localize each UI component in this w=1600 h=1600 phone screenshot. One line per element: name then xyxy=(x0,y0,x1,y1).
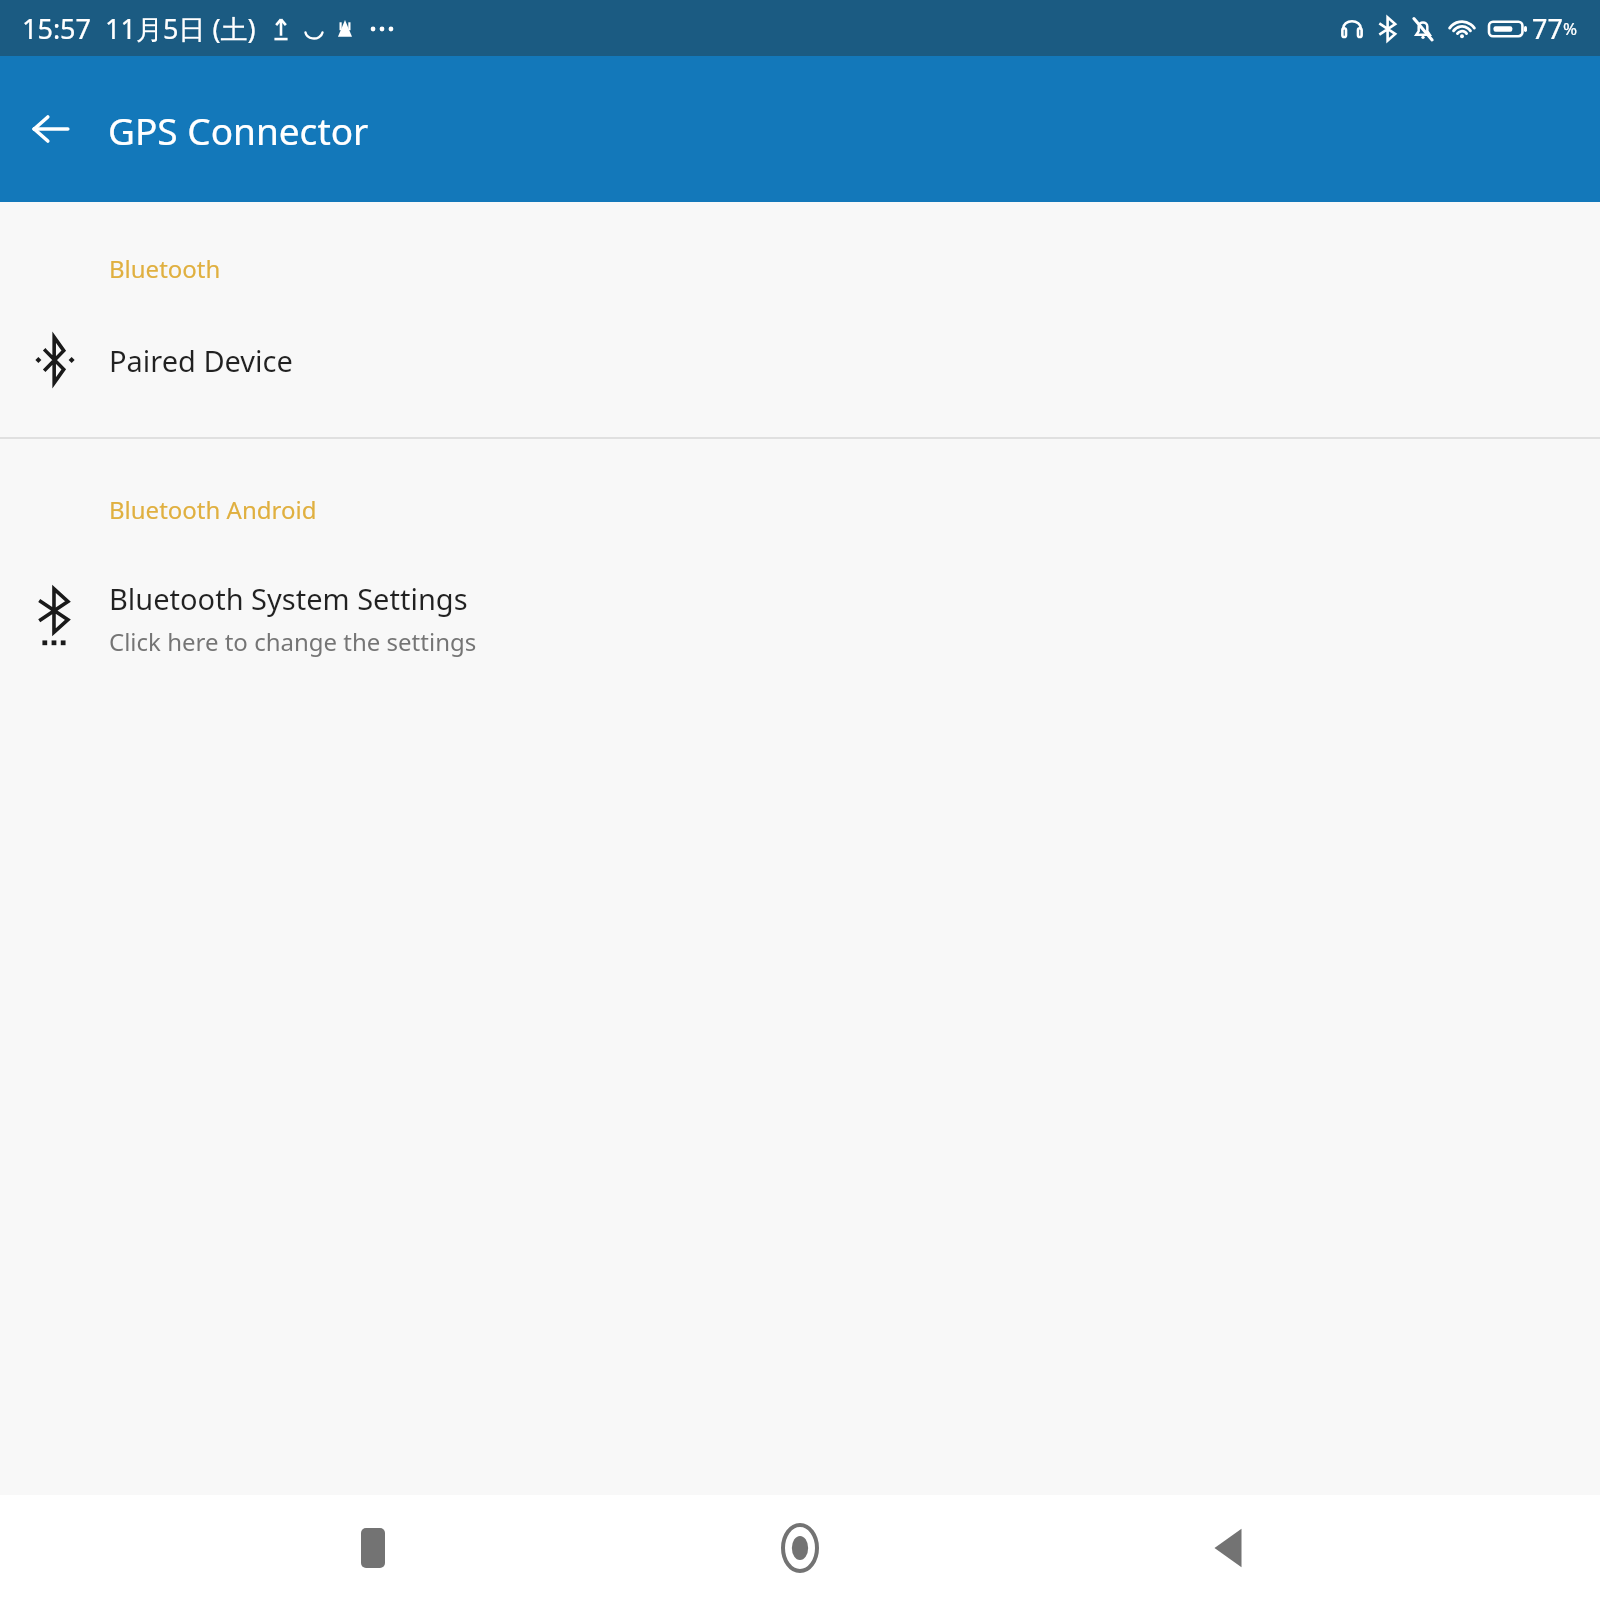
staticText: Click here to change the settings xyxy=(109,625,477,658)
button[interactable]: Home xyxy=(745,1495,855,1600)
staticText: 15:57 11月5日 (土) xyxy=(22,10,256,47)
staticText: % xyxy=(1563,17,1578,40)
staticText: Bluetooth xyxy=(109,252,221,285)
staticText: Bluetooth System Settings xyxy=(109,579,468,618)
button[interactable]: Bluetooth System Settings xyxy=(0,570,1600,666)
staticText: 77 xyxy=(1532,10,1563,47)
staticText: Bluetooth Android xyxy=(109,493,317,526)
staticText: GPS Connector xyxy=(108,105,369,155)
button[interactable]: Back xyxy=(18,96,84,162)
button[interactable]: Paired Device xyxy=(0,329,1600,391)
button[interactable]: Recent apps xyxy=(318,1495,428,1600)
staticText: Paired Device xyxy=(109,341,293,380)
button[interactable]: Back xyxy=(1173,1495,1283,1600)
